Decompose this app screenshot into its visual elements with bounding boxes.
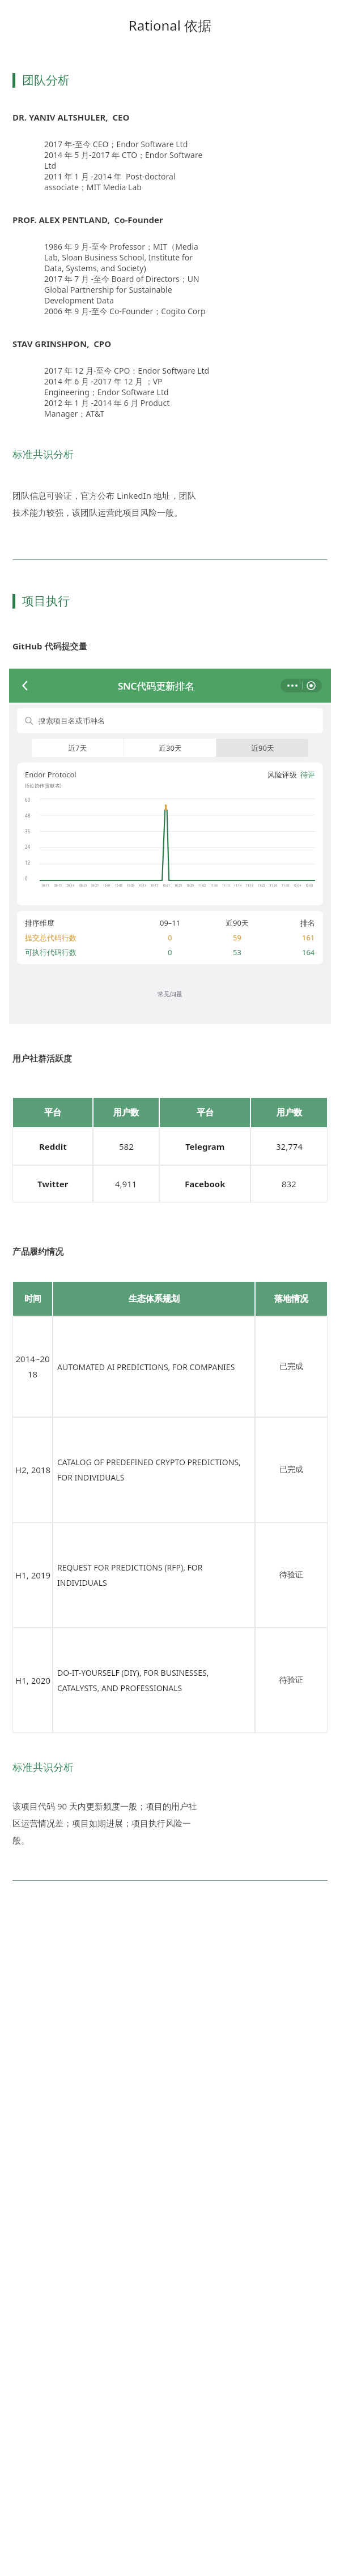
staticText: 59	[233, 932, 241, 943]
staticText: 0	[168, 947, 172, 957]
button[interactable]: Menu	[287, 682, 315, 690]
staticText: 待验证	[279, 1570, 303, 1580]
staticText: 近30天	[159, 743, 182, 753]
staticText: 1986 年 9 月-至今 Professor；MIT（Media	[44, 241, 330, 252]
staticText: Twitter	[37, 1178, 69, 1189]
staticText: 可执行代码行数	[25, 948, 76, 957]
staticText: 11-26	[270, 884, 278, 888]
staticText: 团队信息可验证，官方公布 LinkedIn 地址，团队 技术能力较强，该团队运营…	[12, 490, 196, 519]
staticText: Endor Protocol	[25, 769, 76, 780]
staticText: 0	[168, 932, 172, 943]
staticText: Lab, Sloan Business School, Institute fo…	[44, 252, 330, 263]
staticText: SNC代码更新排名	[118, 679, 195, 692]
staticText: 53	[233, 947, 241, 957]
staticText: 已完成	[279, 1465, 303, 1475]
staticText: 832	[282, 1178, 296, 1189]
staticText: GitHub 代码提交量	[12, 640, 87, 652]
staticText: DR. YANIV ALTSHULER, CEO	[12, 112, 130, 123]
staticText: DO-IT-YOURSELF (DIY), FOR BUSINESSES, CA…	[57, 1667, 250, 1693]
staticText: 164	[302, 947, 315, 957]
staticText: Global Partnership for Sustainable	[44, 284, 330, 295]
staticText: 2014~2018	[15, 1353, 50, 1380]
staticText: 11-22	[258, 884, 266, 888]
staticText: 平台	[197, 1107, 214, 1118]
staticText: PROF. ALEX PENTLAND, Co-Founder	[12, 214, 163, 225]
staticText: 12-04	[294, 884, 301, 888]
staticText: 项目执行	[22, 594, 70, 609]
staticText: 60	[25, 797, 31, 803]
staticText: 生态体系规划	[129, 1294, 180, 1304]
staticText: H2, 2018	[15, 1464, 50, 1475]
staticText: 风险评级	[267, 770, 297, 779]
staticText: 161	[302, 932, 315, 943]
staticText: 近90天	[226, 918, 249, 928]
staticText: 09-23	[79, 884, 87, 888]
staticText: 2014 年 5 月-2017 年 CTO；Endor Software	[44, 149, 330, 160]
button[interactable]: 搜索项目名或币种名	[17, 708, 323, 733]
staticText: 0	[25, 875, 28, 882]
staticText: Ltd	[44, 160, 330, 171]
staticText: 用户社群活跃度	[12, 1054, 72, 1064]
button[interactable]: 近30天	[124, 739, 216, 757]
staticText: 时间	[24, 1294, 41, 1304]
staticText: 2017 年 12 月-至今 CPO；Endor Software Ltd	[44, 365, 330, 376]
staticText: 平台	[44, 1107, 61, 1118]
staticText: 4,911	[115, 1178, 137, 1189]
staticText: 2014 年 6 月 -2017 年 12 月 ；VP	[44, 376, 330, 387]
staticText: 11-14	[234, 884, 242, 888]
staticText: 2017 年 7 月 -至今 Board of Directors；UN	[44, 273, 330, 284]
staticText: 该项目代码 90 天内更新频度一般；项目的用户社 区运营情况差；项目如期进展；项…	[12, 1800, 197, 1846]
staticText: (6位协作贡献者)	[25, 782, 62, 789]
staticText: 排名	[300, 918, 315, 927]
staticText: 2017 年-至今 CEO；Endor Software Ltd	[44, 139, 330, 149]
staticText: 标准共识分析	[12, 448, 74, 461]
staticText: Reddit	[39, 1141, 67, 1152]
staticText: 已完成	[279, 1362, 303, 1372]
staticText: 标准共识分析	[12, 1761, 74, 1774]
staticText: 搜索项目名或币种名	[39, 716, 105, 725]
staticText: 待验证	[279, 1675, 303, 1685]
staticText: REQUEST FOR PREDICTIONS (RFP), FOR INDIV…	[57, 1562, 250, 1588]
staticText: Manager；AT&T	[44, 408, 330, 419]
staticText: 32,774	[276, 1141, 303, 1152]
staticText: 09–11	[160, 918, 181, 928]
staticText: 09-11	[42, 884, 50, 888]
staticText: 24	[25, 844, 31, 850]
staticText: 10-09	[127, 884, 135, 888]
staticText: STAV GRINSHPON, CPO	[12, 338, 112, 349]
staticText: 落地情况	[274, 1294, 308, 1304]
staticText: AUTOMATED AI PREDICTIONS, FOR COMPANIES	[57, 1362, 235, 1372]
staticText: Facebook	[185, 1178, 226, 1189]
staticText: 09-19	[67, 884, 75, 888]
staticText: 10-21	[163, 884, 171, 888]
staticText: 2011 年 1 月 -2014 年 Post-doctoral	[44, 171, 330, 182]
button[interactable]: 近90天	[216, 739, 308, 757]
staticText: Data, Systems, and Society)	[44, 263, 330, 273]
staticText: 10-01	[103, 884, 111, 888]
staticText: 团队分析	[22, 73, 70, 88]
staticText: 产品履约情况	[12, 1247, 63, 1257]
staticText: 11-06	[210, 884, 218, 888]
staticText: 11-30	[282, 884, 290, 888]
staticText: 10-25	[175, 884, 182, 888]
button[interactable]: Back	[18, 678, 33, 693]
staticText: 用户数	[113, 1107, 139, 1118]
staticText: 582	[119, 1141, 134, 1152]
staticText: Development Data	[44, 295, 330, 306]
staticText: CATALOG OF PREDEFINED CRYPTO PREDICTIONS…	[57, 1457, 250, 1483]
button[interactable]: 近7天	[32, 739, 124, 757]
staticText: 11-18	[246, 884, 254, 888]
staticText: 10-05	[115, 884, 123, 888]
staticText: 提交总代码行数	[25, 933, 76, 942]
staticText: associate；MIT Media Lab	[44, 182, 330, 192]
staticText: 排序维度	[25, 918, 54, 927]
staticText: Telegram	[185, 1141, 225, 1152]
staticText: 常见问题	[158, 990, 182, 998]
staticText: 09-15	[54, 884, 62, 888]
staticText: 10-29	[186, 884, 194, 888]
staticText: 11-10	[222, 884, 230, 888]
staticText: 36	[25, 828, 31, 835]
staticText: H1, 2020	[15, 1675, 50, 1686]
staticText: 用户数	[277, 1107, 302, 1118]
staticText: 2006 年 9 月-至今 Co-Founder；Cogito Corp	[44, 306, 330, 316]
